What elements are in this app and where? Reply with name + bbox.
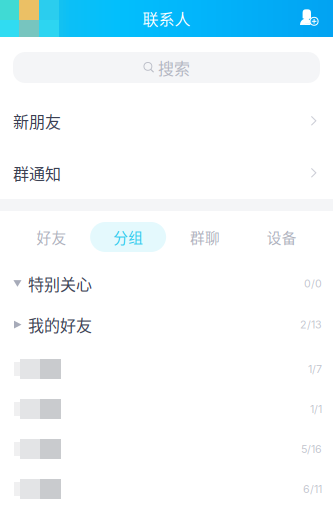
staticText: 1/1 bbox=[310, 402, 322, 415]
button[interactable]: 群聊 bbox=[166, 211, 243, 263]
staticText: 新朋友 bbox=[13, 109, 61, 133]
staticText: 群聊 bbox=[190, 226, 220, 248]
staticText: 群通知 bbox=[13, 161, 61, 185]
staticText: 我的好友 bbox=[28, 313, 92, 336]
button[interactable]: Contact group, 5/16 bbox=[0, 429, 333, 469]
staticText: 好友 bbox=[36, 226, 66, 248]
button[interactable]: 新朋友 bbox=[0, 95, 333, 147]
button[interactable]: 搜索 bbox=[13, 52, 320, 83]
button[interactable]: Add friend bbox=[290, 3, 333, 34]
button[interactable]: 特别关心 bbox=[0, 263, 333, 304]
staticText: 搜索 bbox=[158, 56, 190, 79]
staticText: 分组 bbox=[113, 226, 143, 248]
button[interactable]: Contact group, 1/1 bbox=[0, 389, 333, 429]
staticText: 5/16 bbox=[301, 442, 322, 455]
button[interactable]: 设备 bbox=[243, 211, 320, 263]
staticText: 0/0 bbox=[304, 277, 322, 290]
button[interactable]: 好友 bbox=[13, 211, 90, 263]
button[interactable]: 群通知 bbox=[0, 147, 333, 199]
button[interactable]: Contact group, 1/7 bbox=[0, 349, 333, 389]
staticText: 2/13 bbox=[300, 318, 322, 331]
staticText: 6/11 bbox=[303, 482, 322, 495]
staticText: 联系人 bbox=[142, 7, 190, 30]
staticText: 设备 bbox=[267, 226, 297, 248]
button[interactable]: 分组 bbox=[90, 211, 167, 263]
staticText: 特别关心 bbox=[28, 272, 92, 295]
button[interactable]: Contact group, 6/11 bbox=[0, 469, 333, 509]
button[interactable]: 我的好友 bbox=[0, 304, 333, 345]
staticText: 1/7 bbox=[308, 362, 322, 375]
